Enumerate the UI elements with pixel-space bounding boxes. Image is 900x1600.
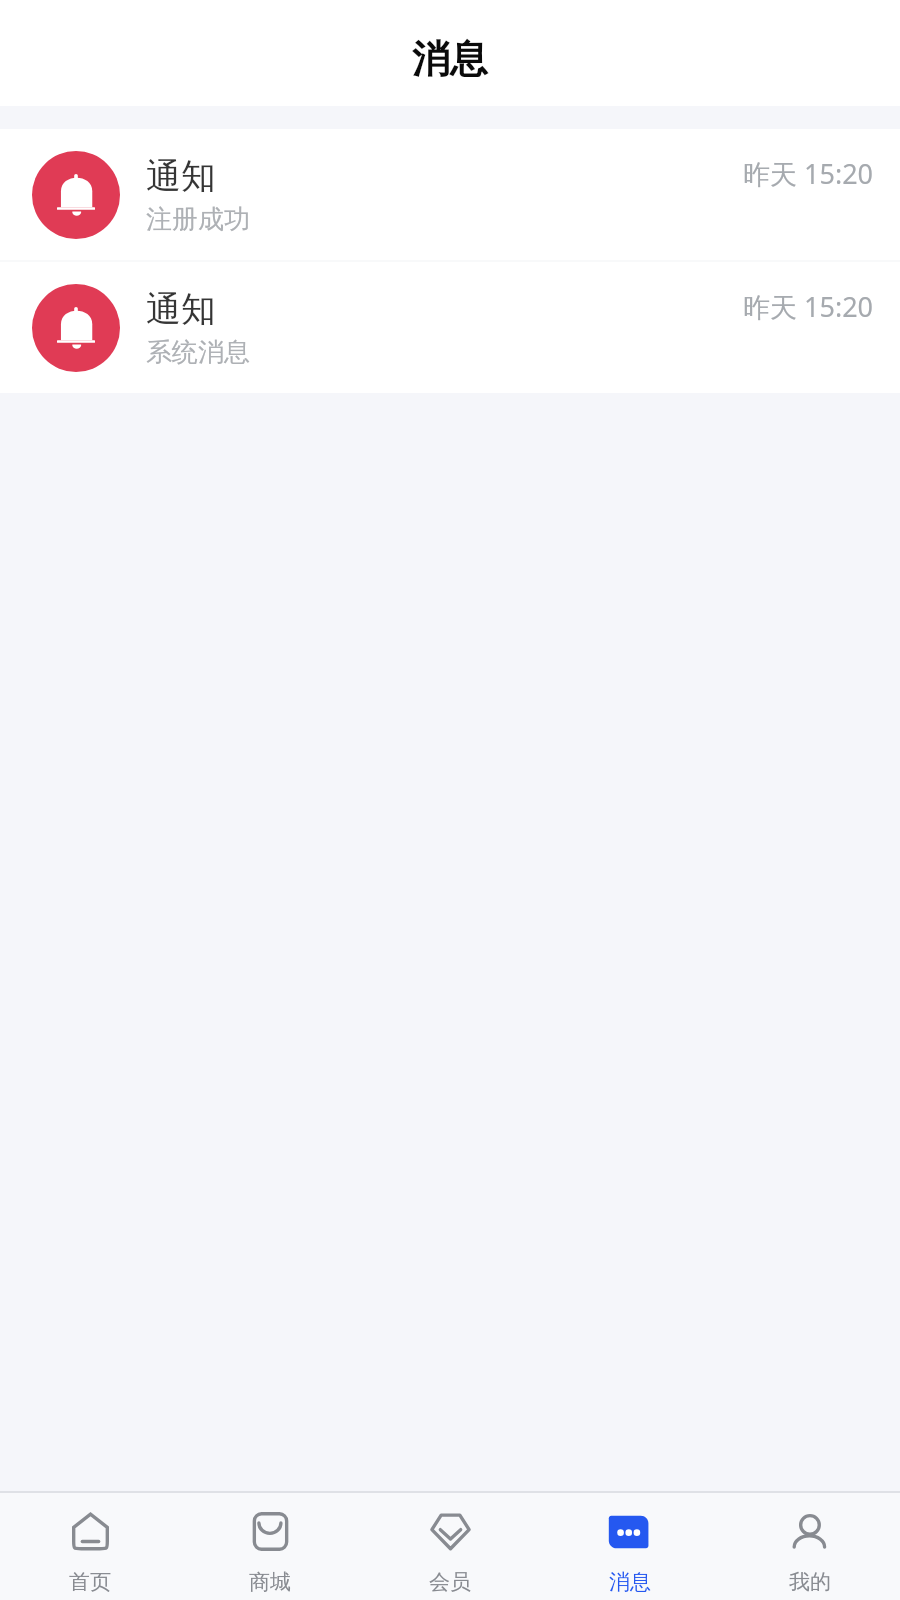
- button[interactable]: 消息: [540, 1493, 720, 1600]
- button[interactable]: 首页: [0, 1493, 180, 1600]
- other: 通知: [32, 151, 120, 239]
- staticText: 通知: [146, 154, 216, 198]
- staticText: 首页: [69, 1569, 111, 1595]
- button[interactable]: 通知: [0, 129, 900, 260]
- staticText: 系统消息: [146, 336, 250, 369]
- button[interactable]: 商城: [180, 1493, 360, 1600]
- button[interactable]: 我的: [720, 1493, 900, 1600]
- staticText: 注册成功: [146, 203, 250, 236]
- staticText: 昨天 15:20: [743, 288, 874, 325]
- button[interactable]: 通知: [0, 262, 900, 393]
- staticText: 消息: [609, 1569, 651, 1595]
- staticText: 商城: [249, 1569, 291, 1595]
- other: 通知: [32, 284, 120, 372]
- button[interactable]: 会员: [360, 1493, 540, 1600]
- staticText: 我的: [789, 1569, 831, 1595]
- staticText: 昨天 15:20: [743, 155, 874, 192]
- staticText: 消息: [412, 35, 488, 83]
- staticText: 会员: [429, 1569, 471, 1595]
- staticText: 通知: [146, 287, 216, 331]
